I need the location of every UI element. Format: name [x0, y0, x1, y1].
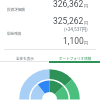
staticText: 円 [84, 3, 88, 9]
staticText: 1,100 [63, 36, 84, 46]
staticText: 325,262 [53, 16, 84, 26]
staticText: 現金残高 [7, 31, 22, 36]
staticText: 326,362 [53, 0, 84, 9]
button[interactable]: 全体を表示 [0, 54, 50, 63]
staticText: 円 [84, 40, 88, 46]
staticText: 全体を表示 [16, 56, 34, 61]
staticText: 円 [84, 20, 88, 26]
staticText: 投資評価額 [7, 7, 25, 12]
button[interactable]: ポートフォリオ情報 [50, 54, 100, 63]
staticText: (+24,537円) [64, 26, 88, 33]
staticText: ポートフォリオ情報 [59, 56, 92, 61]
